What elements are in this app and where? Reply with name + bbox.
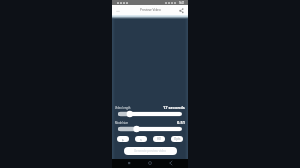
staticText: Video length (115, 106, 131, 110)
staticText: Generate preview video (134, 149, 167, 153)
button[interactable]: Share (178, 7, 185, 14)
button[interactable] (112, 125, 188, 133)
staticText: 17 seconds (163, 105, 185, 110)
button[interactable]: HD (153, 136, 165, 142)
staticText: 9:41 (179, 1, 185, 5)
button[interactable]: Opts (171, 136, 183, 142)
staticText: 0.51 (177, 120, 185, 125)
button[interactable]: Navigate up (114, 7, 121, 14)
staticText: Opts (174, 137, 181, 141)
button[interactable]: ↻ (135, 136, 147, 142)
staticText: HD (157, 137, 162, 141)
button[interactable] (112, 110, 188, 118)
staticText: Model size (115, 121, 128, 125)
staticText: Preview Video (140, 8, 161, 12)
staticText: ↻ (140, 138, 143, 141)
staticText: ▶ (122, 138, 125, 141)
button[interactable]: ▶ (117, 136, 129, 142)
button[interactable]: Generate preview video (124, 147, 177, 155)
